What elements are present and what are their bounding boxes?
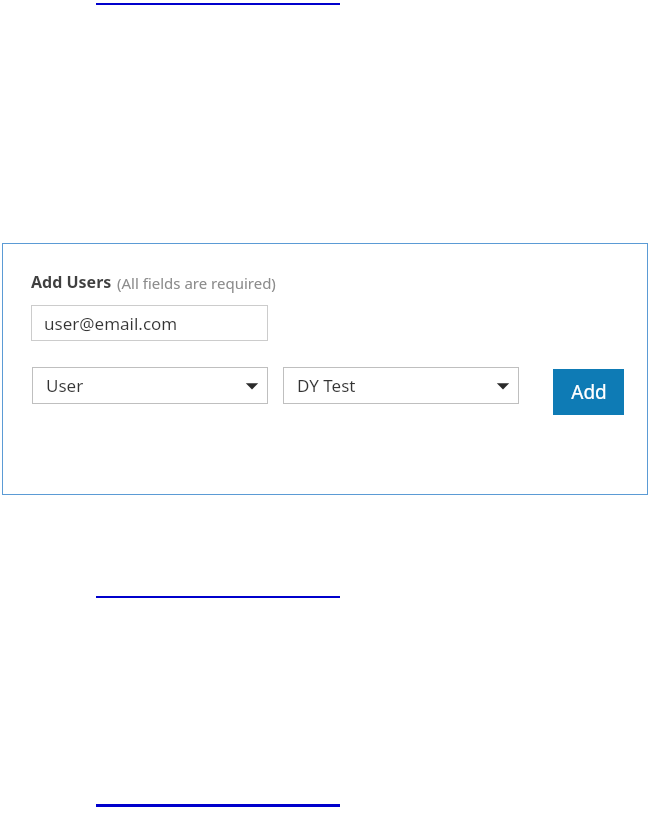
button[interactable]: user@email.com: [31, 305, 268, 341]
staticText: Add Users: [31, 271, 112, 293]
button[interactable]: User: [32, 367, 268, 404]
staticText: DY Test: [297, 374, 356, 397]
staticText: Add: [571, 379, 607, 405]
button[interactable]: DY Test: [283, 367, 519, 404]
button[interactable]: Add: [553, 369, 624, 415]
staticText: user@email.com: [44, 312, 178, 335]
staticText: (All fields are required): [117, 273, 276, 293]
staticText: User: [46, 374, 84, 397]
